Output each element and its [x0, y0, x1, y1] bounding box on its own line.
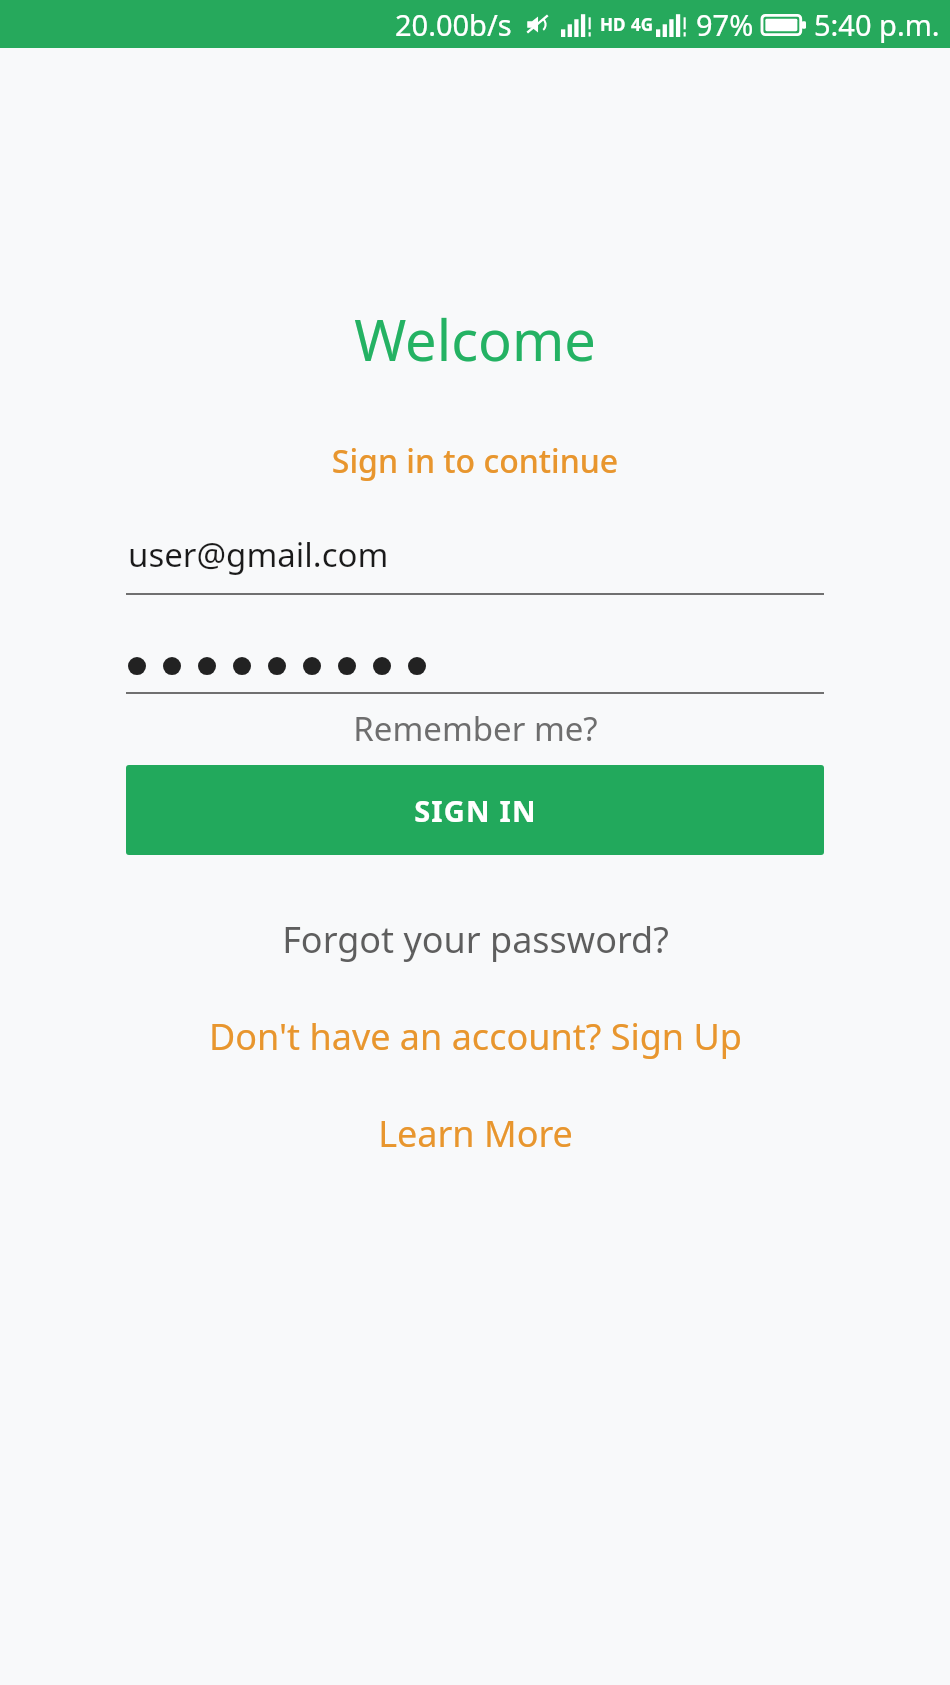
button[interactable]: user@gmail.com [126, 532, 824, 595]
button[interactable]: Password [126, 640, 824, 694]
staticText: Remember me? [353, 706, 598, 751]
staticText: user@gmail.com [128, 532, 389, 577]
staticText: 5:40 p.m. [814, 5, 940, 44]
staticText: Don't have an account? Sign Up [209, 1012, 742, 1061]
staticText: 97% [696, 5, 754, 44]
staticText: 20.00b/s [395, 5, 512, 44]
other: Password [128, 640, 824, 682]
button[interactable]: Don't have an account? Sign Up [0, 1012, 950, 1061]
button[interactable]: Forgot your password? [0, 915, 950, 964]
button[interactable]: SIGN IN [126, 765, 824, 855]
staticText: HD [600, 13, 626, 36]
button[interactable]: Remember me? [0, 706, 950, 751]
staticText: Welcome [0, 301, 950, 377]
staticText: Learn More [378, 1109, 573, 1158]
button[interactable]: Learn More [0, 1109, 950, 1158]
staticText: SIGN IN [414, 791, 537, 830]
staticText: Forgot your password? [282, 915, 669, 964]
staticText: 4G [631, 13, 654, 36]
staticText: Sign in to continue [0, 439, 950, 483]
